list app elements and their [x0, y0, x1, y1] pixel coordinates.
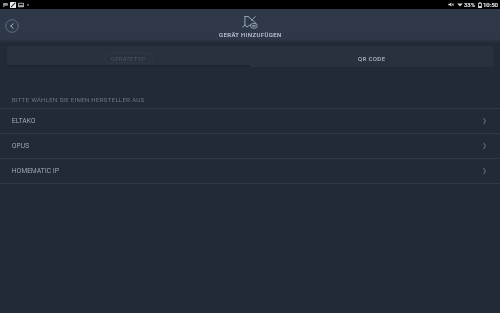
button[interactable]: GERÄTETYP	[7, 49, 250, 67]
button[interactable]: OPUS	[0, 134, 500, 158]
button[interactable]: ELTAKO	[0, 109, 500, 133]
staticText: 10:50	[483, 1, 498, 8]
staticText: GERÄTETYP	[111, 55, 146, 62]
button[interactable]: Back	[3, 17, 21, 35]
staticText: BITTE WÄHLEN SIE EINEN HERSTELLER AUS	[12, 96, 145, 103]
staticText: ELTAKO	[12, 117, 36, 125]
staticText: HOMEMATIC IP	[12, 167, 60, 175]
staticText: OPUS	[12, 142, 30, 150]
staticText: QR CODE	[358, 55, 386, 62]
button[interactable]: HOMEMATIC IP	[0, 159, 500, 183]
button[interactable]: QR CODE	[250, 49, 493, 67]
staticText: GERÄT HINZUFÜGEN	[219, 31, 282, 38]
staticText: 33%	[464, 1, 476, 8]
